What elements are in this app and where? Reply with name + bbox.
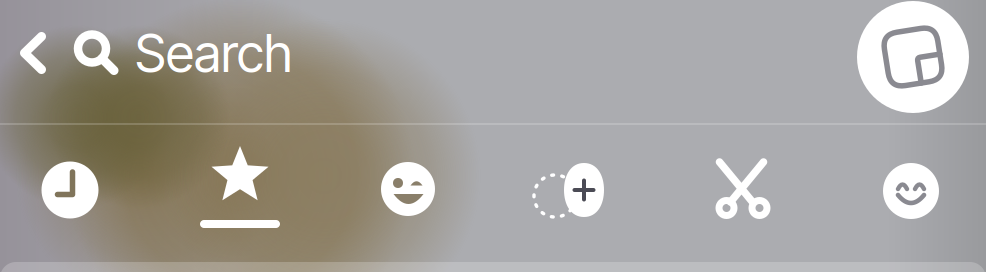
button[interactable]: Search — [74, 18, 374, 88]
button[interactable]: Recent — [10, 138, 130, 242]
button[interactable]: Create sticker — [518, 138, 638, 242]
button[interactable]: Bitmoji — [851, 139, 971, 243]
button[interactable]: Favourites — [180, 138, 300, 242]
button[interactable]: Emoji — [348, 137, 468, 241]
button[interactable]: Cutouts — [683, 135, 803, 239]
button[interactable]: Stickers — [857, 1, 969, 113]
staticText: Search — [135, 21, 292, 84]
button[interactable]: Back — [7, 18, 59, 88]
